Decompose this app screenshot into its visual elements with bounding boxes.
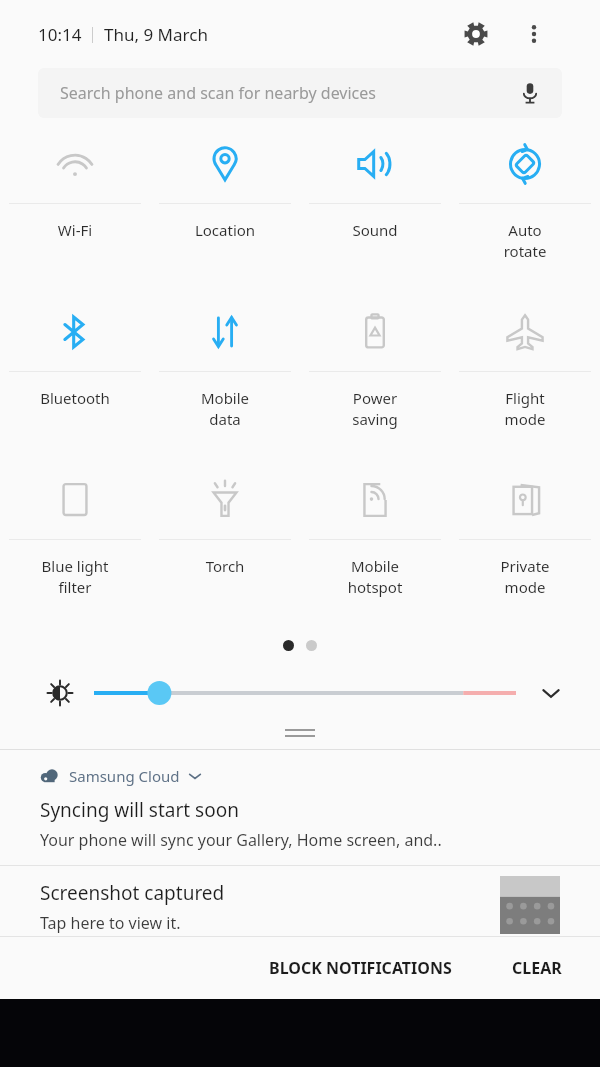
staticText: Search phone and scan for nearby devices: [60, 82, 376, 104]
staticText: Location: [150, 220, 300, 240]
button[interactable]: Mobile data: [150, 292, 300, 460]
staticText: Mobile data: [150, 388, 300, 430]
staticText: Flight mode: [450, 388, 600, 430]
staticText: Mobile hotspot: [300, 556, 450, 598]
button[interactable]: Auto rotate: [450, 124, 600, 292]
staticText: Wi-Fi: [0, 220, 150, 240]
button[interactable]: Sound: [300, 124, 450, 292]
button[interactable]: CLEAR: [496, 945, 578, 991]
staticText: Power saving: [300, 388, 450, 430]
button[interactable]: Screenshot captured: [0, 866, 600, 936]
button[interactable]: Wi-Fi: [0, 124, 150, 292]
staticText: Private mode: [450, 556, 600, 598]
button[interactable]: Mobile hotspot: [300, 460, 450, 628]
button[interactable]: Voice search: [512, 75, 548, 111]
button[interactable]: Location: [150, 124, 300, 292]
button[interactable]: Bluetooth: [0, 292, 150, 460]
staticText: Torch: [150, 556, 300, 576]
button[interactable]: Samsung Cloud: [0, 750, 600, 865]
staticText: Bluetooth: [0, 388, 150, 408]
button[interactable]: Flight mode: [450, 292, 600, 460]
button[interactable]: Brightness: [40, 673, 80, 713]
staticText: Screenshot captured: [40, 880, 225, 906]
button[interactable]: Torch: [150, 460, 300, 628]
button[interactable]: Search phone and scan for nearby devices: [38, 68, 562, 118]
button[interactable]: Blue light filter: [0, 460, 150, 628]
staticText: Your phone will sync your Gallery, Home …: [40, 829, 442, 851]
button[interactable]: Power saving: [300, 292, 450, 460]
button[interactable]: Settings: [454, 12, 498, 56]
staticText: Sound: [300, 220, 450, 240]
button[interactable]: BLOCK NOTIFICATIONS: [253, 945, 468, 991]
staticText: Syncing will start soon: [40, 797, 239, 823]
staticText: Samsung Cloud: [69, 766, 180, 786]
staticText: 10:14: [38, 23, 82, 46]
staticText: Blue light filter: [0, 556, 150, 598]
button[interactable]: Expand brightness settings: [530, 672, 572, 714]
staticText: Thu, 9 March: [104, 23, 208, 46]
staticText: BLOCK NOTIFICATIONS: [269, 957, 452, 979]
staticText: Tap here to view it.: [40, 912, 181, 934]
staticText: CLEAR: [512, 957, 562, 979]
staticText: Auto rotate: [450, 220, 600, 262]
button[interactable]: Private mode: [450, 460, 600, 628]
button[interactable]: Brightness slider: [94, 673, 516, 713]
button[interactable]: More options: [512, 12, 556, 56]
